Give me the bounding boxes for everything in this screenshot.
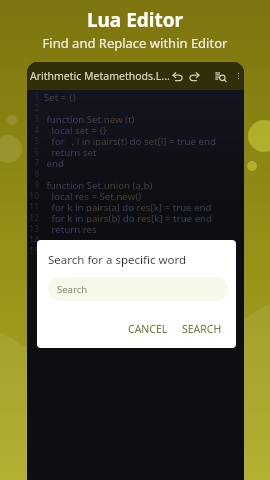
button[interactable]: Redo: [187, 69, 201, 83]
button[interactable]: CANCEL: [122, 319, 174, 339]
staticText: local res = Set.new(): [44, 190, 142, 201]
button[interactable]: Search: [48, 277, 228, 301]
staticText: 5: [28, 135, 39, 146]
button[interactable]: SEARCH: [176, 319, 228, 339]
staticText: Find and Replace within Editor: [0, 34, 270, 52]
staticText: return set: [44, 146, 97, 157]
staticText: SEARCH: [182, 322, 222, 336]
staticText: 3: [28, 113, 39, 124]
staticText: Search for a specific word: [48, 252, 187, 268]
staticText: for _, l in ipairs(t) do set[l] = true e…: [44, 135, 216, 146]
staticText: for k in pairs(b) do res[k] = true end: [44, 212, 213, 223]
button[interactable]: More options: [236, 71, 241, 81]
staticText: 12: [28, 212, 39, 223]
staticText: Search: [57, 283, 88, 296]
staticText: Arithmetic Metamethods.L...: [30, 69, 170, 83]
staticText: for k in pairs(a) do res[k] = true end: [44, 201, 212, 212]
staticText: 13: [28, 223, 39, 234]
staticText: 2: [28, 102, 39, 113]
button[interactable]: Undo: [170, 69, 184, 83]
staticText: local set = {}: [44, 124, 107, 135]
staticText: function Set.new (t): [44, 113, 135, 124]
staticText: Set = {}: [44, 91, 77, 102]
staticText: function Set.union (a,b): [44, 179, 153, 190]
staticText: 8: [28, 168, 39, 179]
staticText: CANCEL: [128, 322, 168, 336]
staticText: return res: [44, 223, 97, 234]
staticText: 7: [28, 157, 39, 168]
staticText: 14: [28, 234, 39, 245]
button[interactable]: Find and replace: [213, 69, 227, 83]
staticText: 9: [28, 179, 39, 190]
staticText: Lua Editor: [0, 7, 270, 33]
staticText: end: [44, 157, 64, 168]
staticText: 4: [28, 124, 39, 135]
staticText: 10: [28, 190, 39, 201]
staticText: 6: [28, 146, 39, 157]
staticText: 15: [28, 245, 39, 256]
staticText: 11: [28, 201, 39, 212]
staticText: 1: [28, 91, 39, 102]
